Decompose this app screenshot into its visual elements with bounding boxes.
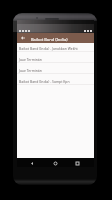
- button[interactable]: Home: [51, 159, 59, 167]
- button[interactable]: Jaue Terminän: [17, 63, 94, 74]
- staticText: Baikot Band (India): [31, 37, 68, 42]
- staticText: Jaue Terminän: [19, 68, 42, 73]
- button[interactable]: Baikot Band (India) - Sampt Kpn: [17, 74, 94, 85]
- button[interactable]: Navigate up: [18, 33, 27, 43]
- button[interactable]: Baikot Band (India) - Janakban Wekht: [17, 43, 94, 52]
- button[interactable]: Jaue Terminän: [17, 52, 94, 63]
- button[interactable]: Recent apps: [73, 159, 81, 167]
- button[interactable]: Back: [28, 159, 36, 167]
- staticText: Jaue Terminän: [19, 57, 42, 62]
- staticText: Baikot Band (India) - Janakban Wekht: [19, 46, 78, 51]
- staticText: Baikot Band (India) - Sampt Kpn: [19, 79, 70, 84]
